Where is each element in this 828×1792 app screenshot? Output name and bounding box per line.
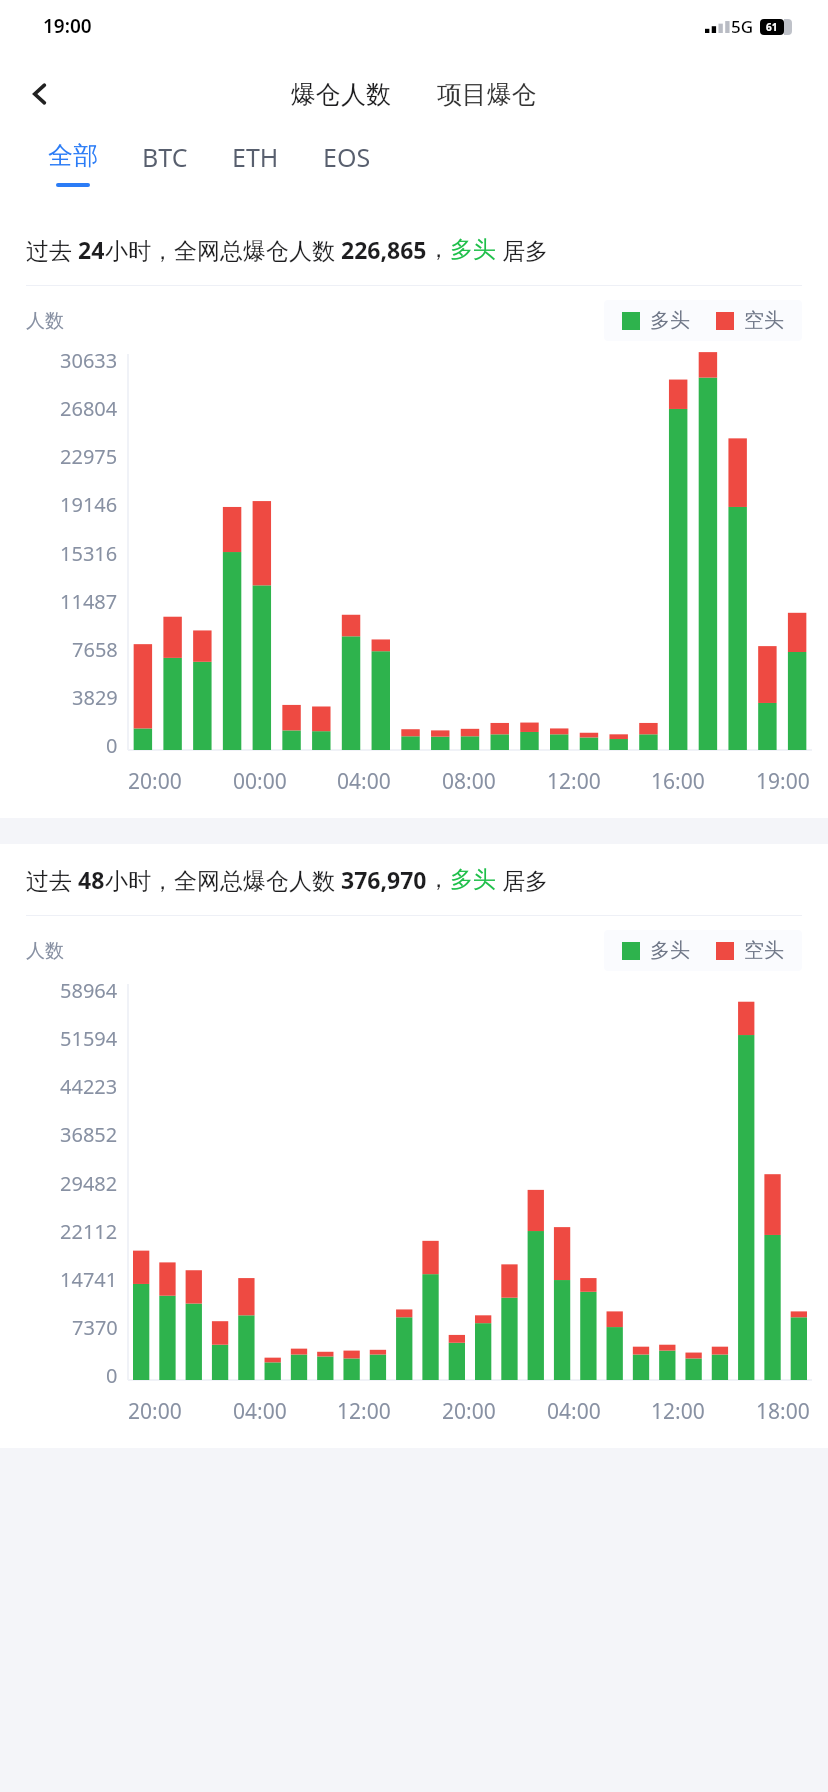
staticText: 项目爆仓 [437,79,537,110]
button[interactable]: 项目爆仓 [427,73,547,116]
staticText: 12:00 [547,767,601,796]
staticText: 11487 [60,588,118,615]
button[interactable]: EOS [301,136,393,194]
staticText: 0 [106,732,118,759]
staticText: 0 [106,1362,118,1389]
staticText: 61 [766,20,778,34]
staticText: 7658 [72,636,118,663]
staticText: 16:00 [651,767,705,796]
staticText: 18:00 [756,1397,810,1426]
staticText: ETH [232,140,279,174]
button[interactable]: Back [14,68,66,120]
staticText: 多头 [650,308,690,333]
staticText: 376,970 [341,864,427,895]
button[interactable]: BTC [120,136,210,194]
staticText: 226,865 [341,234,427,265]
staticText: 19:00 [756,767,810,796]
staticText: 小时，全网总爆仓人数 [105,234,341,265]
staticText: 5G [731,15,754,38]
staticText: 人数 [26,309,64,333]
staticText: 04:00 [337,767,391,796]
button[interactable]: 爆仓人数 [281,73,401,116]
staticText: 08:00 [442,767,496,796]
staticText: 15316 [60,540,118,567]
staticText: 小时，全网总爆仓人数 [105,864,341,895]
staticText: 3829 [72,684,118,711]
button[interactable]: ETH [210,136,301,194]
staticText: 空头 [744,938,784,963]
staticText: 26804 [60,395,118,422]
staticText: 00:00 [233,767,287,796]
staticText: 居多 [496,864,548,895]
staticText: 19146 [60,491,118,518]
staticText: 人数 [26,939,64,963]
staticText: 多头 [450,235,496,264]
staticText: 过去 [26,234,78,265]
staticText: ， [427,865,450,894]
staticText: 12:00 [651,1397,705,1426]
staticText: 24 [78,234,105,265]
staticText: 30633 [60,347,118,374]
staticText: 22975 [60,443,118,470]
staticText: 居多 [496,234,548,265]
staticText: BTC [142,140,188,174]
staticText: 14741 [60,1266,118,1293]
staticText: 过去 [26,864,78,895]
staticText: 20:00 [442,1397,496,1426]
staticText: 22112 [60,1218,118,1245]
button[interactable]: 全部 [26,136,120,191]
staticText: 51594 [60,1025,118,1052]
staticText: 20:00 [128,1397,182,1426]
staticText: 36852 [60,1121,118,1148]
staticText: 爆仓人数 [291,79,391,110]
staticText: 04:00 [233,1397,287,1426]
staticText: 多头 [450,865,496,894]
staticText: 全部 [48,140,98,171]
staticText: 多头 [650,938,690,963]
staticText: 20:00 [128,767,182,796]
staticText: 04:00 [547,1397,601,1426]
staticText: EOS [323,140,371,174]
staticText: 7370 [72,1314,118,1341]
staticText: 29482 [60,1170,118,1197]
staticText: 48 [78,864,105,895]
staticText: 12:00 [337,1397,391,1426]
staticText: 19:00 [43,13,92,39]
staticText: 44223 [60,1073,118,1100]
staticText: ， [427,235,450,264]
staticText: 58964 [60,977,118,1004]
staticText: 空头 [744,308,784,333]
